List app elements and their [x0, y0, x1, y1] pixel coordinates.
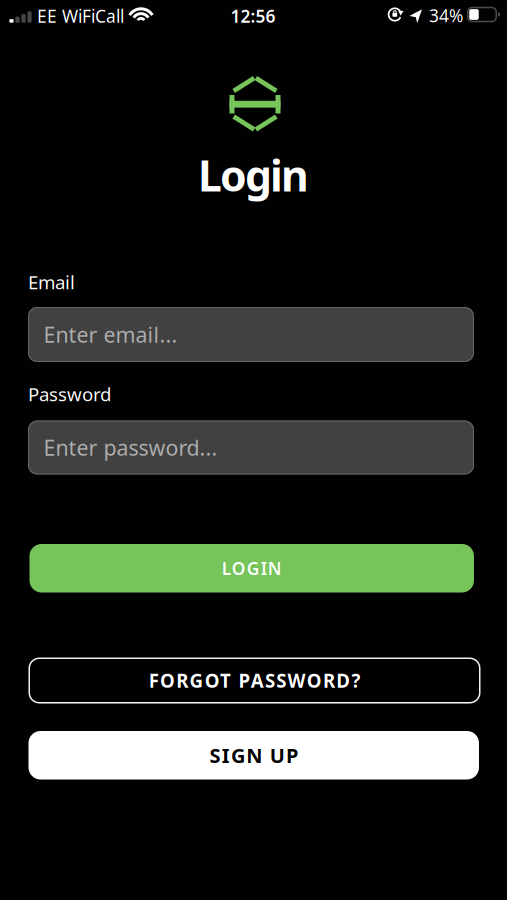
staticText: FORGOT PASSWORD?	[149, 668, 360, 693]
staticText: Enter email...	[43, 320, 177, 349]
staticText: Login	[198, 147, 309, 203]
staticText: SIGN UP	[209, 742, 298, 769]
staticText: Enter password...	[43, 433, 217, 462]
staticText: Password	[28, 382, 111, 406]
staticText: EE WiFiCall	[37, 4, 124, 27]
button[interactable]: LOGIN	[29, 544, 474, 592]
staticText: 34%	[429, 4, 463, 27]
button[interactable]: SIGN UP	[28, 731, 479, 779]
staticText: Email	[28, 270, 75, 294]
button[interactable]: FORGOT PASSWORD?	[28, 657, 480, 703]
staticText: LOGIN	[222, 557, 282, 580]
staticText: 12:56	[230, 4, 275, 27]
